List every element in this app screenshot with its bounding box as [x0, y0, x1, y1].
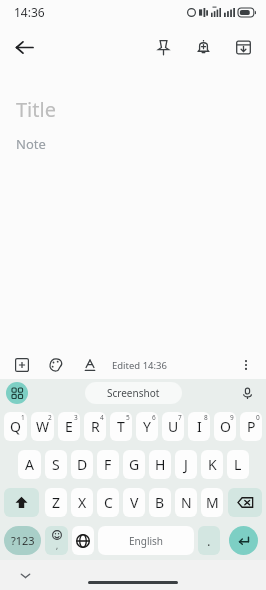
- staticText: 4: [100, 413, 104, 422]
- button[interactable]: T: [110, 412, 132, 441]
- button[interactable]: X: [71, 488, 93, 517]
- staticText: Y: [143, 417, 151, 436]
- staticText: M: [206, 493, 219, 512]
- button[interactable]: Add reminder: [186, 30, 220, 64]
- button[interactable]: U: [162, 412, 184, 441]
- button[interactable]: M: [201, 488, 223, 517]
- staticText: 3: [74, 413, 78, 422]
- button[interactable]: B: [149, 488, 171, 517]
- button[interactable]: Archive: [226, 30, 260, 64]
- staticText: 6: [152, 413, 156, 422]
- staticText: ?123: [11, 533, 35, 548]
- button[interactable]: J: [175, 450, 197, 479]
- button[interactable]: Change language: [72, 526, 94, 555]
- button[interactable]: S: [45, 450, 67, 479]
- staticText: U: [168, 417, 179, 436]
- button[interactable]: Y: [136, 412, 158, 441]
- staticText: N: [181, 493, 192, 512]
- staticText: 5: [126, 413, 130, 422]
- staticText: I: [197, 417, 202, 436]
- staticText: B: [155, 493, 165, 512]
- staticText: Note: [16, 135, 46, 153]
- button[interactable]: K: [201, 450, 223, 479]
- staticText: ,: [56, 540, 59, 551]
- button[interactable]: Keyboard tools: [6, 382, 28, 404]
- button[interactable]: ?123: [4, 526, 41, 555]
- staticText: V: [130, 493, 139, 512]
- staticText: Q: [10, 417, 21, 436]
- staticText: E: [65, 417, 73, 436]
- staticText: G: [129, 455, 140, 474]
- button[interactable]: G: [123, 450, 145, 479]
- button[interactable]: A: [18, 450, 41, 479]
- button[interactable]: Back: [6, 29, 42, 65]
- button[interactable]: Enter: [229, 526, 258, 555]
- staticText: 2: [48, 413, 52, 422]
- button[interactable]: Hide keyboard: [14, 564, 36, 586]
- staticText: Edited 14:36: [112, 359, 167, 372]
- staticText: C: [104, 493, 113, 512]
- button[interactable]: Color palette: [44, 353, 68, 377]
- button[interactable]: N: [175, 488, 197, 517]
- staticText: Screenshot: [107, 386, 160, 400]
- button[interactable]: Voice input: [236, 382, 258, 404]
- staticText: O: [220, 417, 231, 436]
- staticText: X: [78, 493, 87, 512]
- staticText: S: [52, 455, 60, 474]
- button[interactable]: Shift: [4, 488, 39, 517]
- staticText: Z: [52, 493, 61, 512]
- button[interactable]: V: [123, 488, 145, 517]
- button[interactable]: L: [227, 450, 249, 479]
- button[interactable]: Add: [10, 353, 34, 377]
- staticText: 9: [230, 413, 234, 422]
- staticText: K: [208, 455, 217, 474]
- button[interactable]: R: [84, 412, 106, 441]
- staticText: 8: [204, 413, 208, 422]
- staticText: L: [234, 455, 242, 474]
- button[interactable]: Backspace: [228, 488, 262, 517]
- staticText: A: [25, 455, 34, 474]
- button[interactable]: Pin: [146, 30, 180, 64]
- staticText: P: [247, 417, 256, 436]
- staticText: .: [207, 532, 211, 550]
- button[interactable]: Screenshot: [85, 382, 182, 404]
- button[interactable]: F: [97, 450, 119, 479]
- staticText: 1: [21, 413, 25, 422]
- staticText: H: [155, 455, 166, 474]
- button[interactable]: More options: [234, 353, 258, 377]
- staticText: F: [104, 455, 112, 474]
- button[interactable]: H: [149, 450, 171, 479]
- staticText: English: [129, 534, 164, 548]
- button[interactable]: P: [240, 412, 262, 441]
- staticText: J: [184, 455, 188, 474]
- button[interactable]: Text formatting: [78, 353, 102, 377]
- staticText: R: [91, 417, 100, 436]
- staticText: 0: [256, 413, 260, 422]
- staticText: W: [36, 417, 50, 436]
- staticText: T: [117, 417, 125, 436]
- staticText: 14:36: [14, 4, 45, 20]
- button[interactable]: O: [214, 412, 236, 441]
- button[interactable]: I: [188, 412, 210, 441]
- staticText: 7: [178, 413, 182, 422]
- staticText: Title: [16, 96, 56, 123]
- button[interactable]: W: [31, 412, 54, 441]
- staticText: D: [77, 455, 88, 474]
- button[interactable]: C: [97, 488, 119, 517]
- button[interactable]: D: [71, 450, 93, 479]
- button[interactable]: Emoji: [45, 526, 68, 555]
- button[interactable]: Z: [45, 488, 67, 517]
- button[interactable]: Q: [4, 412, 27, 441]
- button[interactable]: E: [58, 412, 80, 441]
- button[interactable]: Period: [198, 526, 220, 555]
- button[interactable]: English: [98, 526, 194, 555]
